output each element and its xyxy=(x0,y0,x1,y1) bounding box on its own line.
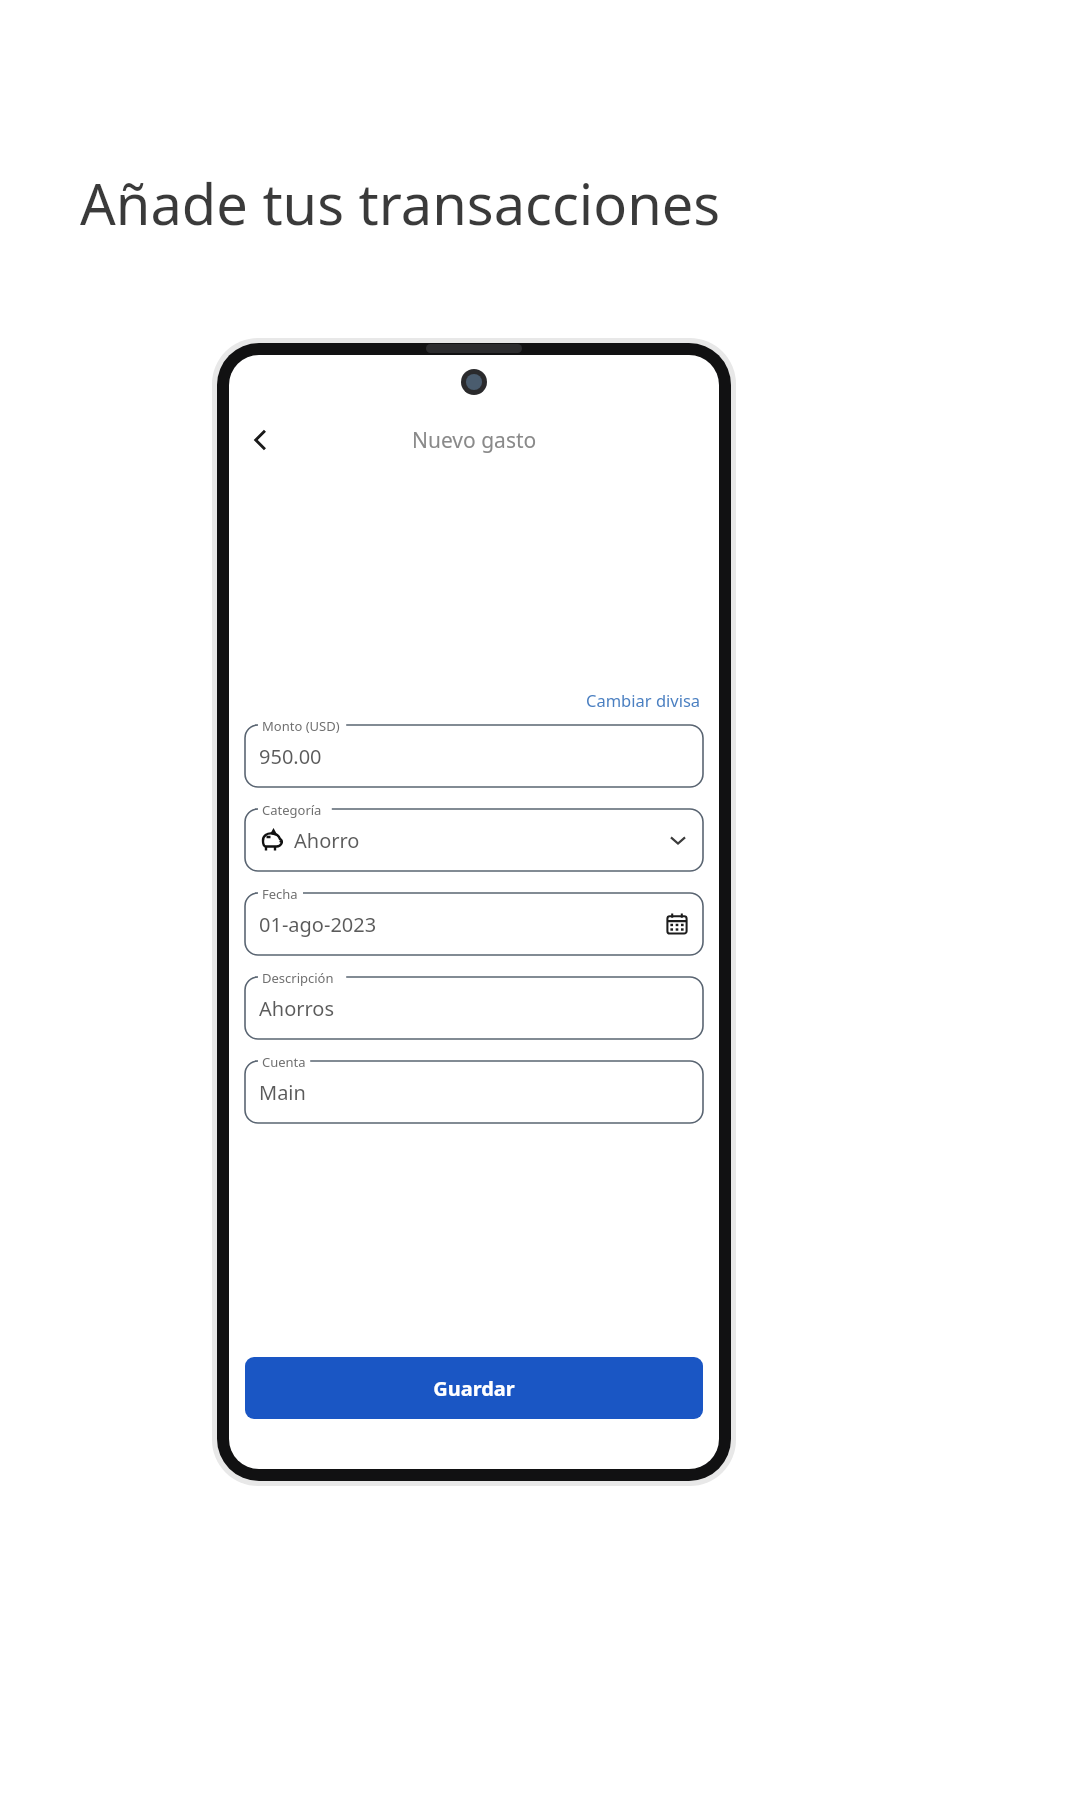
staticText: Ahorros xyxy=(259,995,689,1022)
staticText: 950.00 xyxy=(259,743,689,770)
staticText: Cuenta xyxy=(262,1053,306,1071)
staticText: Categoría xyxy=(262,801,322,819)
button[interactable]: Back xyxy=(237,416,285,464)
staticText: Monto (USD) xyxy=(262,717,340,735)
staticText: Nuevo gasto xyxy=(412,426,537,455)
button[interactable]: Fecha xyxy=(245,893,703,955)
button[interactable]: Monto (USD) xyxy=(245,725,703,787)
other: Pick date xyxy=(665,912,689,936)
button[interactable]: Cambiar divisa xyxy=(584,685,703,715)
staticText: 01-ago-2023 xyxy=(259,911,665,938)
button[interactable]: Cuenta xyxy=(245,1061,703,1123)
button[interactable]: Descripción xyxy=(245,977,703,1039)
staticText: Descripción xyxy=(262,969,334,987)
button[interactable]: Guardar xyxy=(245,1357,703,1419)
staticText: Cambiar divisa xyxy=(586,689,701,711)
staticText: Ahorro xyxy=(294,827,667,854)
other: Open dropdown xyxy=(667,829,689,851)
staticText: Guardar xyxy=(433,1375,515,1402)
staticText: Añade tus transacciones xyxy=(80,165,721,241)
staticText: Fecha xyxy=(262,885,298,903)
button[interactable]: Categoría xyxy=(245,809,703,871)
staticText: Main xyxy=(259,1079,689,1106)
